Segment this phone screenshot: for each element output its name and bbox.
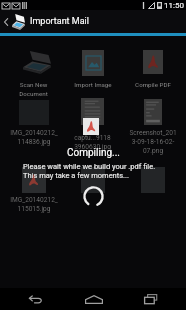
button[interactable]: Home: [71, 288, 116, 310]
button[interactable]: [123, 99, 182, 129]
staticText: IMG_20140212_ 115015.jpg: [10, 196, 58, 213]
staticText: Screenshot_201 3-09-18-16-02- 07.png: [129, 129, 177, 155]
button[interactable]: [123, 167, 182, 197]
staticText: Important Mail: [30, 16, 89, 27]
button[interactable]: [123, 50, 182, 80]
button[interactable]: Recent apps: [128, 288, 173, 310]
button[interactable]: Back: [0, 10, 11, 33]
button[interactable]: [63, 50, 122, 80]
staticText: IMG_20140212_ 114836.jpg: [10, 129, 58, 146]
staticText: Please wait while we build your .pdf fil…: [23, 162, 156, 180]
staticText: Import Image: [74, 81, 112, 88]
staticText: captu...9118 3960630.jpg: [74, 134, 111, 151]
staticText: 11:50: [164, 1, 184, 10]
button[interactable]: [63, 98, 122, 128]
button[interactable]: [63, 167, 122, 197]
button[interactable]: [4, 51, 63, 81]
staticText: Compile PDF: [135, 81, 171, 88]
button[interactable]: [4, 167, 63, 197]
staticText: Scan New Document: [19, 81, 48, 97]
button[interactable]: Back: [13, 288, 58, 310]
button[interactable]: [4, 100, 63, 130]
staticText: Compiling...: [67, 147, 120, 159]
